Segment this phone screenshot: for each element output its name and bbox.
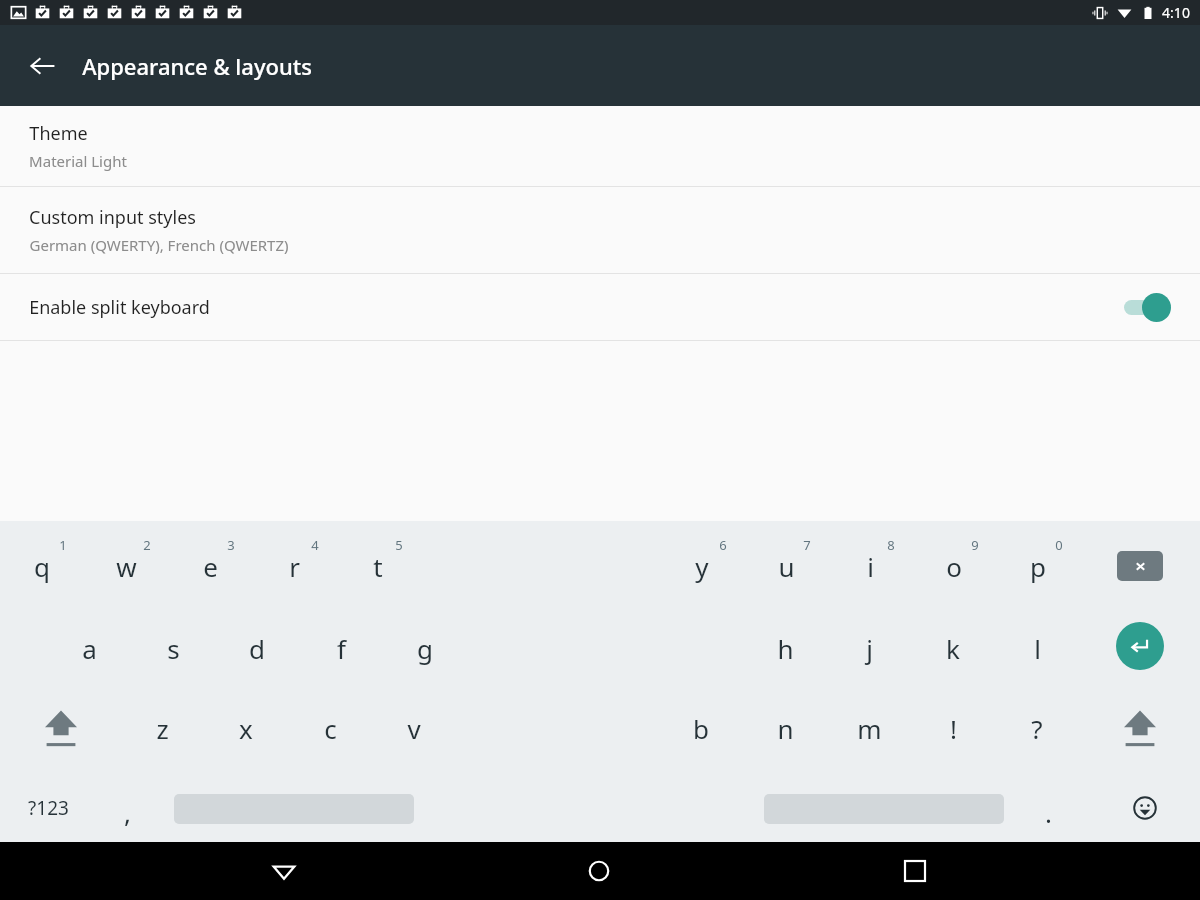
button[interactable]: f xyxy=(303,618,379,678)
staticText: y xyxy=(695,549,709,584)
staticText: j xyxy=(866,631,873,666)
button[interactable]: t xyxy=(340,536,416,596)
button[interactable]: l xyxy=(999,618,1075,678)
button[interactable]: m xyxy=(831,698,907,758)
button[interactable]: s xyxy=(135,618,211,678)
staticText: Enable split keyboard xyxy=(29,295,210,320)
button[interactable]: g xyxy=(387,618,463,678)
button[interactable]: ?123 xyxy=(10,786,86,830)
staticText: 5 xyxy=(395,536,403,554)
button[interactable]: ! xyxy=(915,698,991,758)
button[interactable]: Back xyxy=(253,842,315,900)
staticText: k xyxy=(946,631,960,666)
staticText: h xyxy=(777,631,794,666)
button[interactable]: r xyxy=(256,536,332,596)
staticText: u xyxy=(778,549,795,584)
button[interactable]: Enable split keyboard xyxy=(0,274,1200,340)
staticText: 4 xyxy=(311,536,319,554)
button[interactable]: h xyxy=(747,618,823,678)
staticText: o xyxy=(946,549,962,584)
staticText: German (QWERTY), French (QWERTZ) xyxy=(29,235,289,255)
button[interactable]: p xyxy=(1000,536,1076,596)
staticText: ?123 xyxy=(28,795,69,821)
staticText: t xyxy=(373,549,383,584)
staticText: Theme xyxy=(29,121,88,146)
button[interactable]: j xyxy=(831,618,907,678)
staticText: p xyxy=(1030,549,1046,584)
staticText: r xyxy=(289,549,300,584)
staticText: Material Light xyxy=(29,151,127,171)
staticText: f xyxy=(337,631,346,666)
button[interactable]: e xyxy=(172,536,248,596)
button[interactable]: o xyxy=(916,536,992,596)
button[interactable]: y xyxy=(664,536,740,596)
button[interactable]: Theme xyxy=(0,106,1200,186)
staticText: Appearance & layouts xyxy=(82,51,312,81)
staticText: x xyxy=(239,711,253,746)
button[interactable]: ? xyxy=(999,698,1075,758)
button[interactable]: Back xyxy=(20,43,66,89)
staticText: 1 xyxy=(59,536,67,554)
button[interactable]: i xyxy=(832,536,908,596)
staticText: . xyxy=(1045,795,1052,830)
staticText: 6 xyxy=(719,536,727,554)
staticText: 3 xyxy=(227,536,235,554)
staticText: e xyxy=(203,549,218,584)
button[interactable]: Recents xyxy=(884,842,946,900)
button[interactable]: z xyxy=(124,698,200,758)
staticText: d xyxy=(249,631,265,666)
staticText: l xyxy=(1034,631,1041,666)
staticText: b xyxy=(693,711,709,746)
staticText: i xyxy=(867,549,874,584)
button[interactable]: q xyxy=(4,536,80,596)
button[interactable]: d xyxy=(219,618,295,678)
staticText: 8 xyxy=(887,536,895,554)
staticText: w xyxy=(116,549,137,584)
staticText: 7 xyxy=(803,536,811,554)
button[interactable]: Shift xyxy=(31,701,91,757)
staticText: , xyxy=(124,795,131,830)
staticText: v xyxy=(407,711,421,746)
staticText: 9 xyxy=(971,536,979,554)
staticText: z xyxy=(156,711,169,746)
staticText: m xyxy=(857,711,882,746)
button[interactable]: Enter xyxy=(1116,622,1164,670)
button[interactable]: Emoji xyxy=(1123,786,1167,830)
button[interactable]: Backspace xyxy=(1112,549,1168,583)
button[interactable]: b xyxy=(663,698,739,758)
staticText: ! xyxy=(950,711,957,746)
staticText: 2 xyxy=(143,536,151,554)
button[interactable]: c xyxy=(292,698,368,758)
staticText: n xyxy=(777,711,794,746)
staticText: 4:10 xyxy=(1162,3,1190,22)
button[interactable]: Shift xyxy=(1110,701,1170,757)
staticText: a xyxy=(82,631,97,666)
staticText: g xyxy=(417,631,433,666)
button[interactable]: w xyxy=(88,536,164,596)
button[interactable]: k xyxy=(915,618,991,678)
button[interactable]: n xyxy=(747,698,823,758)
staticText: ? xyxy=(1031,711,1043,746)
button[interactable]: . xyxy=(1010,782,1086,842)
button[interactable]: a xyxy=(51,618,127,678)
button[interactable]: Custom input styles xyxy=(0,187,1200,273)
button[interactable]: x xyxy=(208,698,284,758)
staticText: q xyxy=(34,549,50,584)
button[interactable]: v xyxy=(376,698,452,758)
staticText: 0 xyxy=(1055,536,1063,554)
staticText: c xyxy=(324,711,337,746)
staticText: s xyxy=(167,631,180,666)
button[interactable]: u xyxy=(748,536,824,596)
staticText: Custom input styles xyxy=(29,205,196,230)
button[interactable]: Home xyxy=(568,842,630,900)
button[interactable]: , xyxy=(89,782,165,842)
